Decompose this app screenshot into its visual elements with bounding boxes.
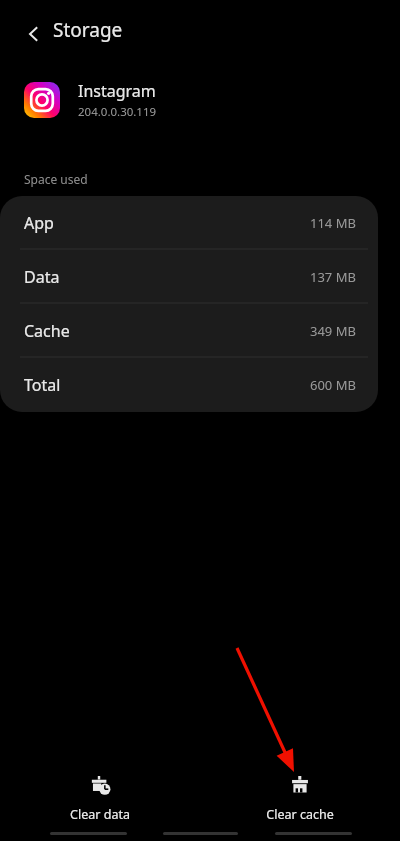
button[interactable]: Instagram xyxy=(0,76,400,124)
staticText: App xyxy=(24,212,54,234)
staticText: Data xyxy=(24,266,60,288)
other: Clear data xyxy=(89,776,111,798)
button[interactable]: Clear data xyxy=(35,766,165,822)
button[interactable]: Back xyxy=(12,12,56,56)
staticText: 600 MB xyxy=(310,376,356,394)
button[interactable]: Total xyxy=(0,358,378,412)
staticText: Storage xyxy=(53,17,123,43)
staticText: Clear data xyxy=(70,806,130,822)
button[interactable]: Data xyxy=(0,250,378,304)
button[interactable]: App xyxy=(0,196,378,250)
staticText: Clear cache xyxy=(266,806,334,822)
staticText: 137 MB xyxy=(310,268,356,286)
button[interactable]: Cache xyxy=(0,304,378,358)
other: Clear cache xyxy=(289,776,311,798)
staticText: Total xyxy=(24,374,61,396)
staticText: 114 MB xyxy=(310,214,356,232)
staticText: Cache xyxy=(24,320,70,342)
staticText: 349 MB xyxy=(310,322,356,340)
staticText: 204.0.0.30.119 xyxy=(78,104,157,120)
staticText: Space used xyxy=(24,171,88,187)
staticText: Instagram xyxy=(78,80,156,102)
button[interactable]: Clear cache xyxy=(235,766,365,822)
